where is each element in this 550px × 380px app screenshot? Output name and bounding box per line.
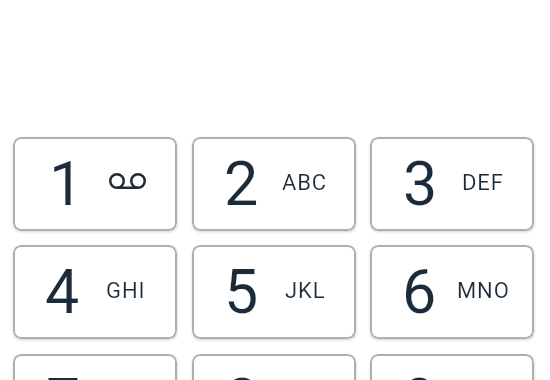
staticText: 4 — [45, 256, 80, 327]
staticText: MNO — [457, 278, 510, 304]
staticText: 5 — [224, 256, 259, 327]
staticText: 1 — [49, 148, 84, 219]
button[interactable]: 8 TUV — [192, 354, 356, 380]
staticText: 9 — [403, 365, 438, 380]
staticText: 6 — [402, 256, 437, 327]
staticText: 2 — [224, 148, 259, 219]
button[interactable]: 1 voicemail — [13, 137, 177, 231]
button[interactable]: 9 WXYZ — [370, 354, 534, 380]
button[interactable]: 4 GHI — [13, 245, 177, 339]
button[interactable]: 5 JKL — [192, 245, 356, 339]
staticText: 8 — [225, 365, 260, 380]
staticText: JKL — [285, 278, 326, 304]
staticText: ABC — [282, 170, 328, 196]
button[interactable]: 6 MNO — [370, 245, 534, 339]
staticText: 3 — [403, 148, 438, 219]
staticText: DEF — [462, 170, 504, 196]
staticText: 7 — [46, 365, 81, 380]
button[interactable]: 7 PQRS — [13, 354, 177, 380]
button[interactable]: 2 ABC — [192, 137, 356, 231]
staticText: GHI — [106, 278, 146, 304]
button[interactable]: 3 DEF — [370, 137, 534, 231]
